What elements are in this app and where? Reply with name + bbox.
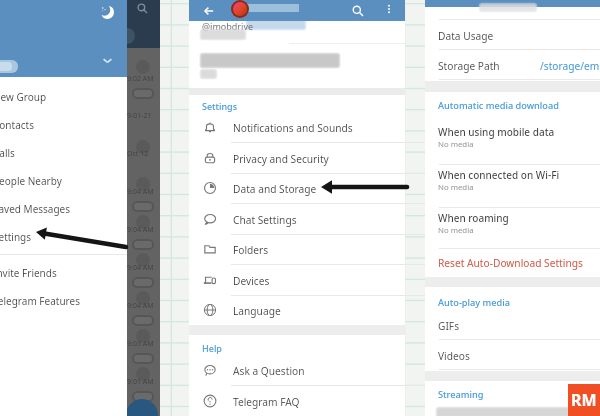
button[interactable]: Settings bbox=[0, 228, 127, 246]
staticText: Auto-play media bbox=[438, 296, 510, 309]
button[interactable]: When connected on Wi-Fi bbox=[425, 164, 600, 207]
staticText: Data Usage bbox=[438, 29, 494, 43]
button[interactable]: Devices bbox=[189, 265, 405, 296]
button[interactable]: Ask a Question bbox=[189, 355, 405, 386]
staticText: No media bbox=[438, 139, 474, 150]
button[interactable]: Language bbox=[189, 295, 405, 326]
button[interactable]: Saved Messages bbox=[0, 200, 127, 218]
staticText: 9:04 AM bbox=[127, 301, 154, 311]
button[interactable]: Telegram FAQ bbox=[189, 386, 405, 416]
staticText: Settings bbox=[0, 230, 32, 244]
button[interactable]: Storage Path bbox=[425, 50, 600, 80]
button[interactable]: Calls bbox=[0, 144, 127, 162]
staticText: Oct 12 bbox=[127, 149, 149, 159]
button[interactable]: Reset Auto-Download Settings bbox=[425, 249, 600, 277]
staticText: Invite Friends bbox=[0, 266, 57, 280]
staticText: When connected on Wi-Fi bbox=[438, 168, 560, 182]
staticText: People Nearby bbox=[0, 174, 62, 188]
button[interactable]: Videos bbox=[425, 340, 600, 370]
button[interactable]: Data and Storage bbox=[189, 173, 405, 204]
button[interactable]: Data Usage bbox=[425, 20, 600, 50]
staticText: /storage/em bbox=[540, 59, 600, 73]
staticText: Automatic media download bbox=[438, 99, 559, 112]
staticText: When roaming bbox=[438, 211, 509, 225]
staticText: @imobdrive bbox=[202, 20, 254, 32]
button[interactable]: Search bbox=[352, 5, 364, 17]
staticText: Telegram FAQ bbox=[233, 395, 300, 409]
button[interactable]: New Group bbox=[0, 88, 127, 106]
button[interactable]: Back bbox=[203, 5, 215, 17]
staticText: Settings bbox=[202, 100, 238, 112]
staticText: Help bbox=[202, 342, 222, 354]
staticText: Storage Path bbox=[438, 59, 500, 73]
staticText: RM bbox=[571, 389, 597, 411]
staticText: Saved Messages bbox=[0, 202, 71, 216]
staticText: Language bbox=[233, 304, 281, 318]
staticText: 9-01-21 bbox=[127, 111, 152, 121]
staticText: Data and Storage bbox=[233, 182, 317, 196]
staticText: No media bbox=[438, 225, 474, 236]
button[interactable]: Folders bbox=[189, 234, 405, 265]
button[interactable]: People Nearby bbox=[0, 172, 127, 190]
button[interactable]: Contacts bbox=[0, 116, 127, 134]
staticText: Folders bbox=[233, 243, 269, 257]
staticText: 9:04 AM bbox=[127, 225, 154, 235]
staticText: 9:03 AM bbox=[127, 339, 154, 349]
button[interactable]: When using mobile data bbox=[425, 121, 600, 164]
staticText: Ask a Question bbox=[233, 364, 305, 378]
staticText: Notifications and Sounds bbox=[233, 121, 353, 135]
button[interactable]: When roaming bbox=[425, 207, 600, 250]
staticText: When using mobile data bbox=[438, 125, 555, 139]
staticText: Devices bbox=[233, 274, 270, 288]
staticText: 9:01 AM bbox=[127, 377, 154, 387]
button[interactable]: More options bbox=[384, 4, 394, 14]
staticText: GIFs bbox=[438, 319, 460, 333]
staticText: Telegram Features bbox=[0, 294, 80, 308]
staticText: 9:02 AM bbox=[127, 74, 154, 84]
staticText: Calls bbox=[0, 146, 15, 160]
button[interactable]: Notifications and Sounds bbox=[189, 112, 405, 143]
staticText: 9:04 AM bbox=[127, 187, 154, 197]
staticText: Videos bbox=[438, 349, 470, 363]
button[interactable]: Privacy and Security bbox=[189, 143, 405, 174]
staticText: Streaming bbox=[438, 388, 484, 401]
button[interactable]: GIFs bbox=[425, 310, 600, 340]
staticText: New Group bbox=[0, 90, 47, 104]
staticText: Privacy and Security bbox=[233, 152, 329, 166]
button[interactable]: Telegram Features bbox=[0, 292, 127, 310]
staticText: Chat Settings bbox=[233, 213, 297, 227]
staticText: Reset Auto-Download Settings bbox=[438, 256, 583, 270]
staticText: No media bbox=[438, 182, 474, 193]
button[interactable]: Chat Settings bbox=[189, 204, 405, 235]
button[interactable]: Invite Friends bbox=[0, 264, 127, 282]
staticText: Contacts bbox=[0, 118, 34, 132]
staticText: 9:04 AM bbox=[127, 263, 154, 273]
